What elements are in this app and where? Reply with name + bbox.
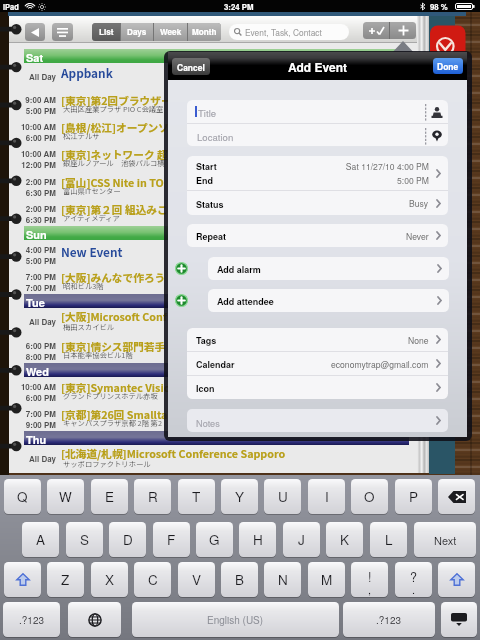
button[interactable]: Switch language <box>68 602 121 637</box>
staticText: [富山]CSS Nite in TO <box>61 175 164 190</box>
button[interactable]: Sun <box>24 226 409 240</box>
button[interactable]: Cancel <box>172 58 210 75</box>
button[interactable]: 4:00 PM <box>9 240 417 267</box>
button[interactable]: List <box>92 23 120 41</box>
button[interactable]: S <box>66 522 103 557</box>
button[interactable]: P <box>395 479 432 514</box>
button[interactable]: Calendar <box>187 352 448 375</box>
button[interactable]: Month <box>188 23 221 41</box>
button[interactable]: T <box>178 479 215 514</box>
button[interactable]: Hide keyboard <box>441 602 477 637</box>
button[interactable]: I <box>308 479 345 514</box>
button[interactable]: Thu <box>24 431 409 445</box>
button[interactable]: 10:00 AM <box>9 377 417 404</box>
staticText: ! <box>368 568 372 586</box>
button[interactable]: Next <box>414 522 476 557</box>
button[interactable]: Status <box>187 191 448 215</box>
button[interactable]: Shift <box>4 562 41 597</box>
button[interactable]: Repeat <box>187 224 448 247</box>
button[interactable]: A <box>22 522 59 557</box>
button[interactable]: L <box>370 522 407 557</box>
button[interactable]: W <box>47 479 84 514</box>
button[interactable]: 6:00 PM <box>9 336 417 363</box>
staticText: 梅田スカイビル <box>63 322 115 333</box>
staticText: E <box>105 487 115 506</box>
button[interactable]: Add attendee <box>208 289 449 312</box>
staticText: Status <box>196 198 224 211</box>
staticText: Notes <box>196 416 220 429</box>
button[interactable]: Icon <box>187 376 448 399</box>
button[interactable]: U <box>264 479 301 514</box>
button[interactable]: .?123 <box>343 602 435 637</box>
staticText: Calendar <box>196 358 235 371</box>
staticText: Sun <box>26 227 47 241</box>
button[interactable]: G <box>196 522 233 557</box>
button[interactable]: Add alarm <box>208 257 449 280</box>
staticText: Busy <box>409 197 429 209</box>
button[interactable]: 2:00 PM <box>9 199 417 226</box>
button[interactable]: Days <box>121 23 153 41</box>
button[interactable]: English (US) <box>132 602 339 637</box>
button[interactable]: 10:00 AM <box>9 117 417 144</box>
staticText: W <box>59 487 72 506</box>
button[interactable]: K <box>326 522 363 557</box>
button[interactable]: 10:00 AM <box>9 144 417 171</box>
button[interactable]: D <box>109 522 146 557</box>
button[interactable]: All Day <box>9 445 417 472</box>
button[interactable]: 7:00 PM <box>9 404 417 431</box>
button[interactable]: Back <box>25 23 45 41</box>
button[interactable]: F <box>153 522 190 557</box>
button[interactable]: M <box>308 562 345 597</box>
button[interactable]: Backspace <box>438 479 475 514</box>
button[interactable]: B <box>221 562 258 597</box>
staticText: Tue <box>26 295 45 309</box>
staticText: Week <box>160 26 182 38</box>
staticText: Y <box>235 487 245 506</box>
button[interactable]: Y <box>221 479 258 514</box>
staticText: Add Event <box>288 58 347 75</box>
button[interactable]: ! <box>351 562 388 597</box>
button[interactable]: Sat <box>24 49 409 63</box>
button[interactable]: E <box>91 479 128 514</box>
button[interactable]: Menu <box>52 23 73 41</box>
staticText: Title <box>198 106 217 120</box>
button[interactable]: 2:00 PM <box>9 172 417 199</box>
button[interactable]: Week <box>154 23 187 41</box>
staticText: [東京]第２回 組込みこ <box>61 202 168 217</box>
staticText: Done <box>437 60 459 72</box>
button[interactable]: Done <box>433 58 463 74</box>
button[interactable]: Tue <box>24 294 409 308</box>
staticText: 6:00 PM <box>9 132 56 143</box>
button[interactable]: Shift <box>438 562 475 597</box>
button[interactable]: Tags <box>187 328 448 351</box>
button[interactable]: R <box>134 479 171 514</box>
button[interactable]: J <box>283 522 320 557</box>
staticText: Sat 11/27/10 4:00 PM <box>345 160 429 172</box>
button[interactable]: Event, Task, Contact <box>229 24 349 40</box>
button[interactable]: Location <box>187 124 448 146</box>
button[interactable]: Q <box>4 479 41 514</box>
button[interactable]: N <box>264 562 301 597</box>
button[interactable]: 9:00 AM <box>9 90 417 117</box>
button[interactable]: Notes <box>187 409 448 432</box>
button[interactable]: All Day <box>9 308 417 335</box>
button[interactable]: All Day <box>9 63 417 90</box>
button[interactable]: X <box>91 562 128 597</box>
staticText: 7:00 PM <box>9 282 56 293</box>
staticText: 富山県ITセンター <box>63 186 121 197</box>
button[interactable]: Add event <box>390 22 416 39</box>
button[interactable]: Add task <box>363 22 389 39</box>
staticText: J <box>298 530 305 549</box>
button[interactable]: O <box>351 479 388 514</box>
button[interactable]: C <box>134 562 171 597</box>
button[interactable]: H <box>239 522 276 557</box>
button[interactable]: V <box>178 562 215 597</box>
button[interactable]: Start <box>187 156 448 190</box>
button[interactable]: 7:00 PM <box>9 267 417 294</box>
button[interactable]: Wed <box>24 363 409 377</box>
staticText: All Day <box>9 453 56 464</box>
button[interactable]: Title <box>187 100 448 123</box>
button[interactable]: .?123 <box>3 602 60 637</box>
button[interactable]: ? <box>395 562 432 597</box>
button[interactable]: Z <box>47 562 84 597</box>
